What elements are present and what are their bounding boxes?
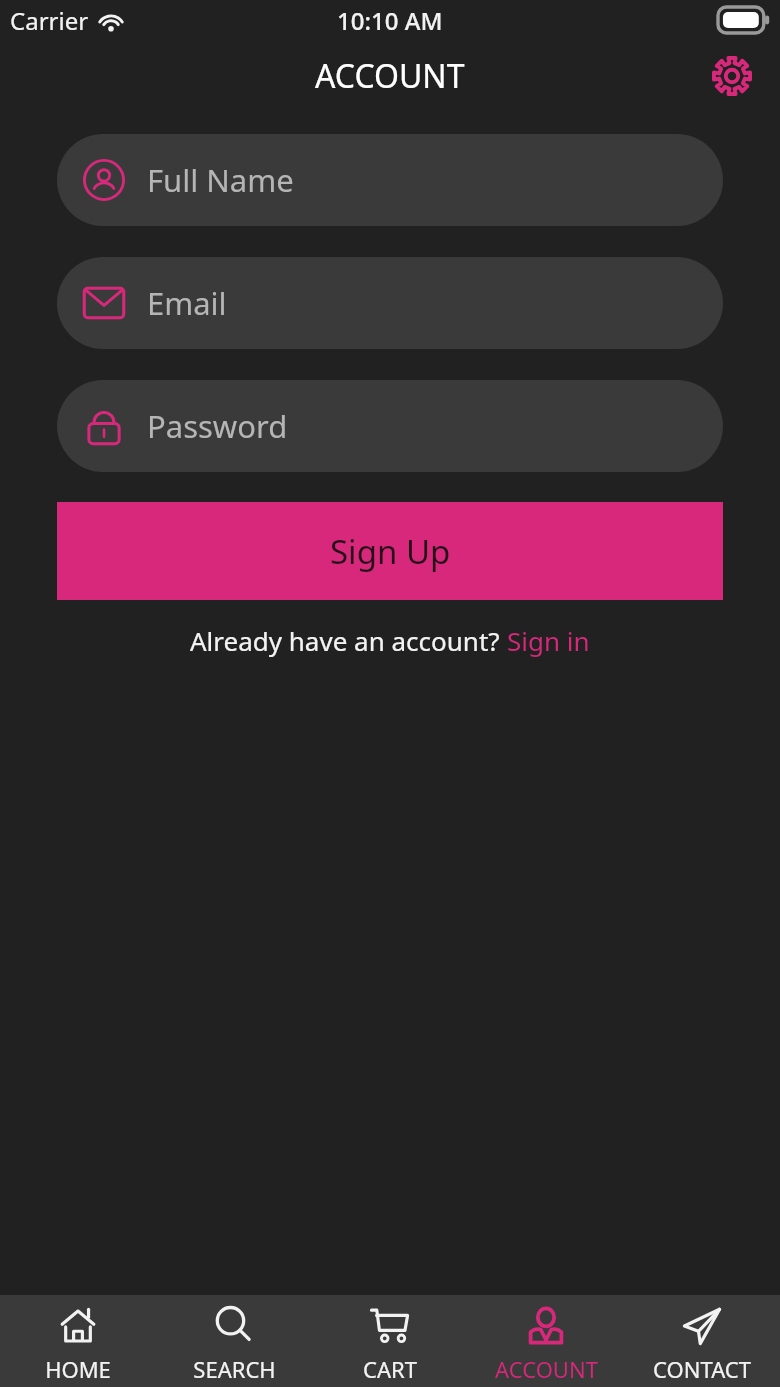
staticText: Sign in: [507, 623, 590, 658]
staticText: SEARCH: [193, 1354, 276, 1384]
staticText: ACCOUNT: [495, 1354, 598, 1384]
staticText: Carrier: [10, 4, 89, 37]
button[interactable]: Settings: [706, 50, 758, 102]
button[interactable]: Full Name: [57, 134, 723, 226]
staticText: 10:10 AM: [337, 4, 443, 37]
staticText: CART: [363, 1354, 417, 1384]
button[interactable]: Password: [57, 380, 723, 472]
staticText: Sign Up: [330, 529, 451, 574]
button[interactable]: ACCOUNT: [468, 1298, 624, 1384]
button[interactable]: HOME: [0, 1298, 156, 1384]
staticText: Already have an account?: [190, 623, 507, 658]
button[interactable]: CART: [312, 1298, 468, 1384]
staticText: CONTACT: [653, 1354, 751, 1384]
staticText: Email: [147, 282, 227, 324]
button[interactable]: Sign Up: [57, 502, 723, 600]
button[interactable]: Sign in: [507, 623, 590, 658]
button[interactable]: CONTACT: [624, 1298, 780, 1384]
button[interactable]: SEARCH: [156, 1298, 312, 1384]
staticText: Full Name: [147, 159, 294, 201]
staticText: Password: [147, 405, 288, 447]
staticText: HOME: [45, 1354, 111, 1384]
button[interactable]: Email: [57, 257, 723, 349]
staticText: ACCOUNT: [315, 54, 465, 98]
